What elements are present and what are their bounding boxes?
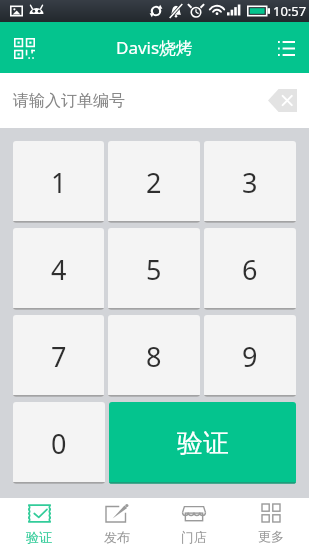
button[interactable]: 门店	[155, 498, 232, 550]
button[interactable]: 8	[108, 315, 200, 397]
staticText: 10:57	[273, 2, 307, 20]
button[interactable]: 5	[108, 228, 200, 310]
button[interactable]: 1	[13, 141, 104, 223]
button[interactable]: 3	[204, 141, 296, 223]
staticText: 4	[51, 251, 67, 288]
staticText: 2	[146, 164, 162, 201]
staticText: 门店	[181, 529, 207, 545]
button[interactable]: Scan QR code	[6, 30, 42, 66]
button[interactable]: 6	[204, 228, 296, 310]
staticText: 7	[51, 338, 67, 375]
staticText: 请输入订单编号	[13, 91, 125, 111]
staticText: 3	[242, 164, 258, 201]
staticText: Davis烧烤	[116, 36, 194, 59]
button[interactable]: 7	[13, 315, 104, 397]
button[interactable]: 0	[13, 402, 105, 484]
button[interactable]: 9	[204, 315, 296, 397]
button[interactable]: Delete	[268, 89, 300, 112]
button[interactable]: 验证	[0, 498, 78, 550]
staticText: 验证	[177, 427, 229, 460]
button[interactable]: 2	[108, 141, 200, 223]
staticText: 发布	[104, 529, 130, 545]
staticText: 1	[51, 164, 67, 201]
staticText: 6	[242, 251, 258, 288]
staticText: 验证	[26, 529, 52, 545]
staticText: 5	[146, 251, 162, 288]
button[interactable]: 发布	[78, 498, 155, 550]
staticText: 8	[146, 338, 162, 375]
button[interactable]: 4	[13, 228, 104, 310]
button[interactable]: Menu	[268, 30, 304, 66]
staticText: 0	[51, 425, 67, 462]
staticText: 9	[242, 338, 258, 375]
button[interactable]: 更多	[232, 498, 309, 550]
staticText: 更多	[258, 528, 284, 544]
button[interactable]: 验证	[109, 402, 296, 484]
